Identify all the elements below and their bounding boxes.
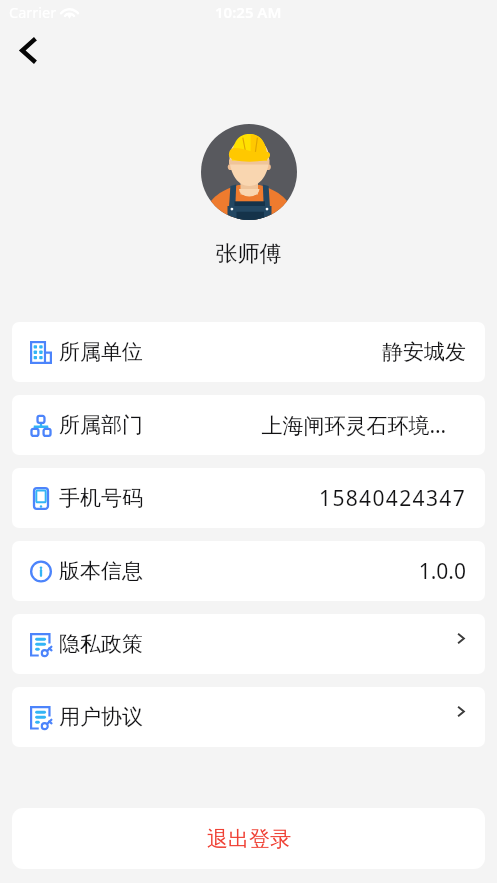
- staticText: 手机号码: [59, 485, 143, 511]
- staticText: 静安城发: [153, 339, 466, 365]
- staticText: 1.0.0: [153, 557, 466, 586]
- staticText: 所属单位: [59, 339, 143, 365]
- staticText: 张师傅: [0, 240, 497, 268]
- staticText: Carrier: [9, 2, 57, 22]
- button[interactable]: 隐私政策: [12, 614, 485, 674]
- staticText: 隐私政策: [59, 631, 143, 657]
- button[interactable]: Back: [6, 31, 50, 70]
- button[interactable]: 退出登录: [12, 808, 485, 869]
- staticText: 所属部门: [59, 412, 143, 438]
- button[interactable]: 用户协议: [12, 687, 485, 747]
- button[interactable]: 所属部门: [12, 395, 485, 455]
- staticText: 用户协议: [59, 704, 143, 730]
- staticText: 版本信息: [59, 558, 143, 584]
- button[interactable]: 所属单位: [12, 322, 485, 382]
- button[interactable]: 手机号码: [12, 468, 485, 528]
- staticText: 上海闸环灵石环境…: [153, 411, 446, 440]
- staticText: 10:25 AM: [215, 2, 282, 22]
- staticText: 15840424347: [153, 484, 466, 513]
- staticText: 退出登录: [207, 826, 291, 852]
- button[interactable]: 版本信息: [12, 541, 485, 601]
